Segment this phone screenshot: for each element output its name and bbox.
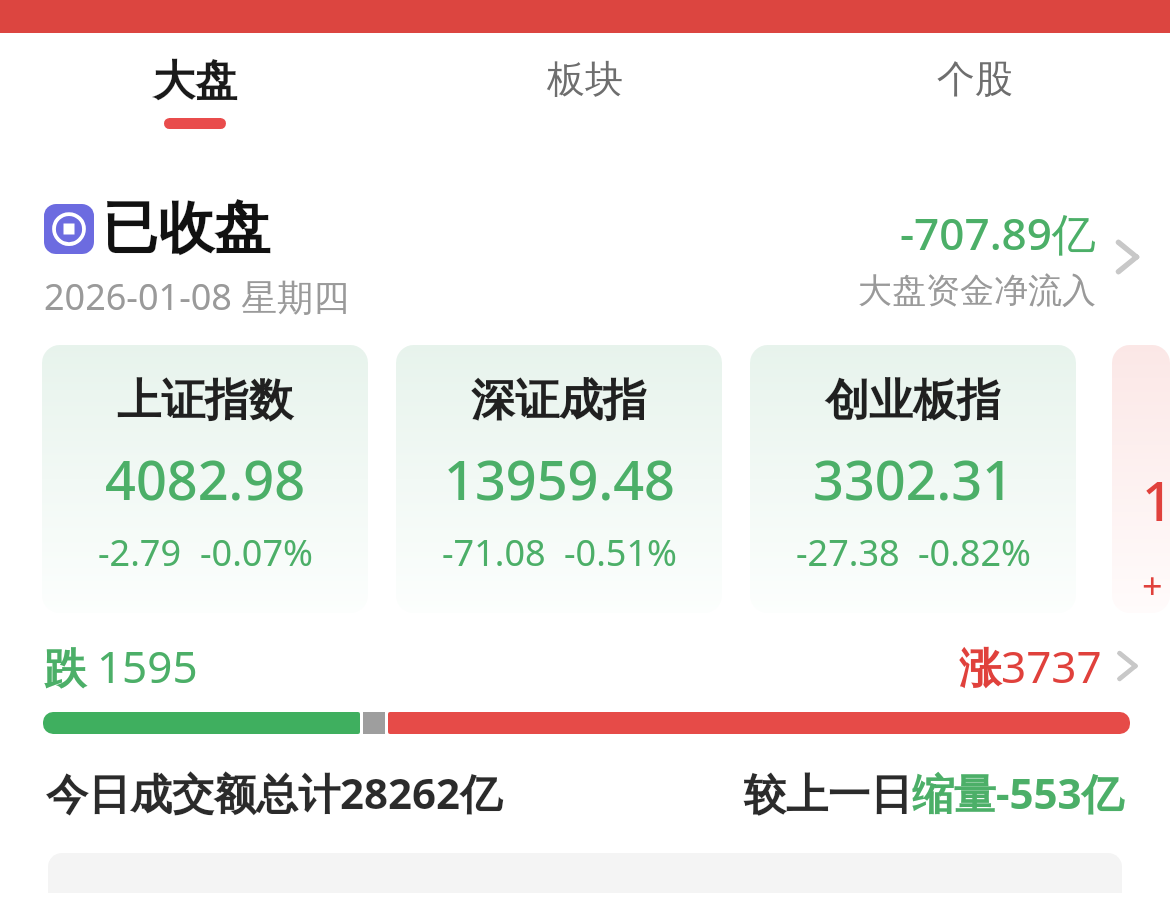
button[interactable]: 大盘 <box>0 55 390 129</box>
staticText: -0.82% <box>918 528 1031 577</box>
button[interactable]: 深证成指 <box>396 345 722 613</box>
staticText: 今日成交额总计28262亿 <box>46 764 503 821</box>
staticText: 深证成指 <box>471 373 647 428</box>
staticText: 板块 <box>547 55 623 103</box>
button[interactable]: 1 <box>1112 345 1170 613</box>
staticText: 13959.48 <box>444 442 675 516</box>
button[interactable]: 上证指数 <box>42 345 368 613</box>
staticText: 创业板指 <box>825 373 1001 428</box>
staticText: 涨3737 <box>959 636 1102 696</box>
staticText: -27.38 <box>796 528 900 577</box>
staticText: 2026-01-08 星期四 <box>44 272 350 321</box>
staticText: 4082.98 <box>105 442 306 516</box>
staticText: -71.08 <box>442 528 546 577</box>
staticText: -0.07% <box>200 528 313 577</box>
staticText: -0.51% <box>564 528 677 577</box>
staticText: 1 <box>1142 463 1170 537</box>
staticText: + <box>1142 561 1163 610</box>
staticText: -707.89亿 <box>900 203 1096 263</box>
staticText: 大盘 <box>153 55 237 108</box>
button[interactable]: 板块 <box>390 55 780 117</box>
button[interactable]: 个股 <box>780 55 1170 117</box>
staticText: 较上一日缩量-553亿 <box>744 764 1124 821</box>
staticText: 个股 <box>937 55 1013 103</box>
staticText: -2.79 <box>98 528 182 577</box>
staticText: 3302.31 <box>813 442 1014 516</box>
button[interactable]: 创业板指 <box>750 345 1076 613</box>
button[interactable]: 跌 1595 <box>0 636 1170 734</box>
staticText: 上证指数 <box>117 373 293 428</box>
staticText: 大盘资金净流入 <box>858 269 1096 312</box>
button[interactable]: 已收盘 <box>44 193 1144 321</box>
staticText: 跌 1595 <box>44 636 198 696</box>
staticText: 已收盘 <box>102 193 270 264</box>
